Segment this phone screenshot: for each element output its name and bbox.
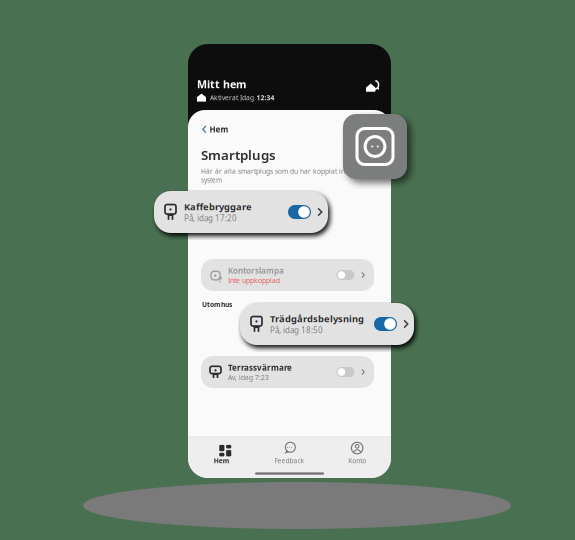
staticText: ? bbox=[218, 274, 222, 285]
button[interactable]: Terrassvärmare bbox=[201, 356, 374, 388]
staticText: På, idag 18:50 bbox=[270, 325, 323, 335]
button[interactable]: Kaffebryggare bbox=[154, 191, 328, 233]
staticText: Av, idag 7:23 bbox=[228, 373, 269, 382]
button[interactable]: Konto bbox=[323, 442, 391, 465]
staticText: Aktiverat Idag bbox=[210, 93, 254, 102]
staticText: Utomhus bbox=[202, 300, 232, 309]
staticText: Terrassvärmare bbox=[228, 362, 292, 373]
staticText: Kontorslampa bbox=[228, 265, 284, 276]
button[interactable]: ? bbox=[201, 259, 374, 291]
staticText: 12:34 bbox=[256, 93, 274, 102]
button[interactable]: Feedback bbox=[256, 442, 323, 465]
button[interactable]: Byt hem bbox=[361, 75, 384, 97]
staticText: Trädgårdsbelysning bbox=[270, 312, 364, 325]
staticText: Här är alla smartplugs som du har koppla… bbox=[201, 167, 361, 184]
staticText: Hem bbox=[209, 124, 228, 135]
staticText: Hem bbox=[214, 456, 230, 465]
staticText: Smartplugs bbox=[201, 146, 276, 164]
staticText: Inte uppkopplad bbox=[228, 276, 280, 285]
button[interactable]: Hem bbox=[188, 442, 256, 465]
button[interactable]: Hem bbox=[198, 120, 232, 139]
button[interactable]: Trädgårdsbelysning bbox=[240, 303, 414, 345]
staticText: Kaffebryggare bbox=[184, 200, 252, 213]
staticText: Mitt hem bbox=[197, 77, 246, 91]
staticText: Konto bbox=[348, 456, 366, 465]
staticText: Feedback bbox=[274, 456, 304, 465]
staticText: På, idag 17:20 bbox=[184, 213, 237, 223]
button[interactable]: Smartplug bbox=[343, 114, 407, 179]
